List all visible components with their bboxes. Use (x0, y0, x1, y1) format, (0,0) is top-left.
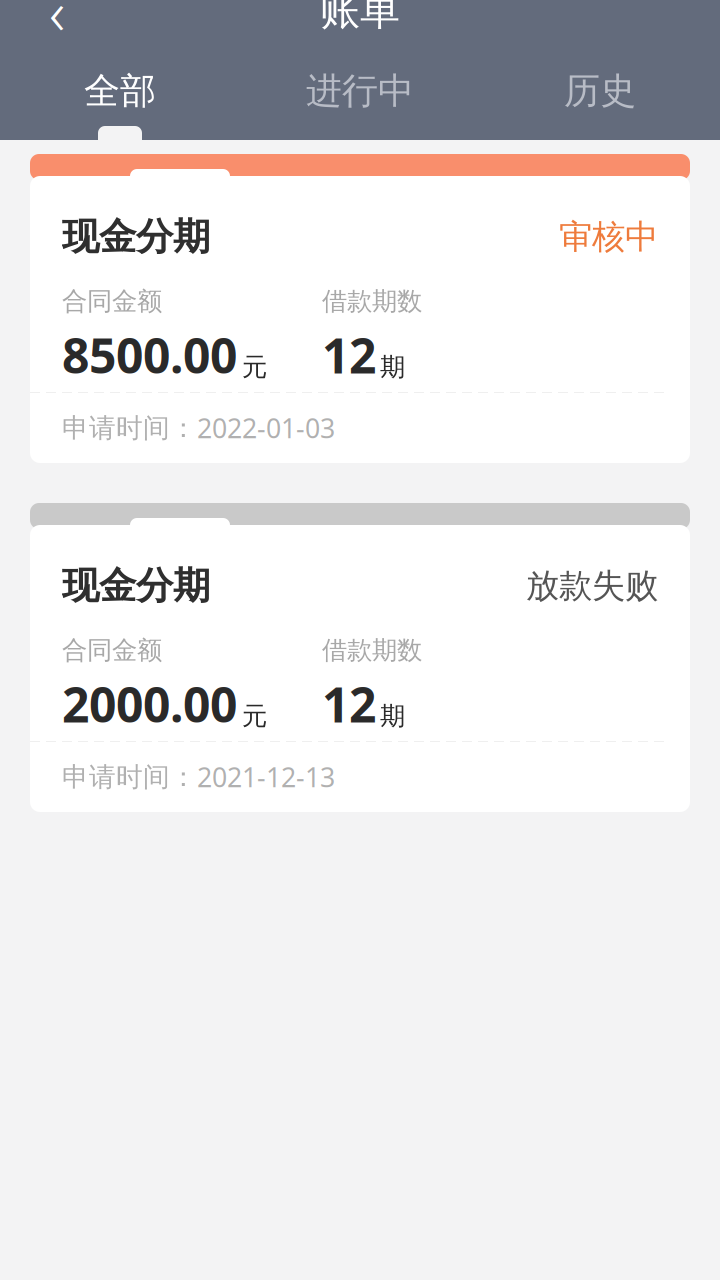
staticText: 期 (380, 352, 405, 383)
button[interactable]: 全部 (0, 62, 240, 120)
staticText: 8500.00 (62, 323, 237, 387)
staticText: 借款期数 (322, 635, 422, 666)
staticText: 账单 (320, 0, 400, 35)
staticText: 12 (322, 672, 376, 736)
staticText: 元 (242, 701, 267, 732)
button[interactable]: 进行中 (240, 62, 480, 120)
staticText: 全部 (84, 69, 156, 113)
staticText: 2021-12-13 (197, 759, 335, 795)
button[interactable]: 现金分期 (30, 507, 690, 812)
staticText: 审核中 (559, 216, 658, 257)
staticText: 进行中 (306, 69, 414, 113)
staticText: ‹ (49, 0, 65, 52)
staticText: 现金分期 (62, 214, 210, 260)
staticText: 12 (322, 323, 376, 387)
staticText: 2000.00 (62, 672, 237, 736)
staticText: 历史 (564, 69, 636, 113)
staticText: 申请时间： (62, 412, 197, 444)
staticText: 合同金额 (62, 286, 162, 317)
staticText: 现金分期 (62, 563, 210, 609)
staticText: 申请时间： (62, 761, 197, 793)
button[interactable]: 返回 (22, 0, 92, 42)
staticText: 期 (380, 701, 405, 732)
staticText: 合同金额 (62, 635, 162, 666)
button[interactable]: 历史 (480, 62, 720, 120)
staticText: 放款失败 (526, 565, 658, 606)
button[interactable]: 现金分期 (30, 158, 690, 463)
staticText: 元 (242, 352, 267, 383)
staticText: 借款期数 (322, 286, 422, 317)
staticText: 2022-01-03 (197, 410, 335, 446)
